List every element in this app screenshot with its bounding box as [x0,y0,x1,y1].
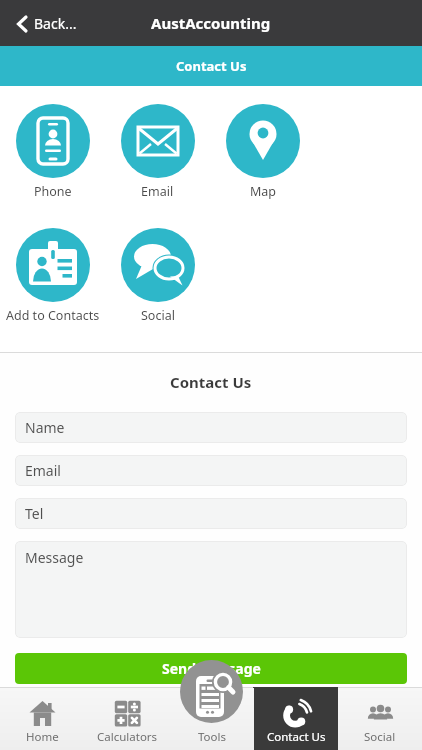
staticText: Home [26,729,59,745]
button[interactable]: Back... [16,14,77,33]
button[interactable] [121,104,195,178]
staticText: Tools [198,729,226,745]
staticText: Social [141,307,175,324]
staticText: Name [25,418,65,437]
staticText: Contact Us [170,372,252,392]
staticText: Email [141,183,174,200]
staticText: Email [25,461,61,480]
button[interactable]: Calculators [85,688,170,750]
staticText: Add to Contacts [6,307,100,324]
staticText: Map [250,183,277,200]
staticText: Send Message [162,659,261,678]
button[interactable]: Email [15,455,407,486]
button[interactable] [16,104,90,178]
button[interactable]: Send Message [15,653,407,684]
staticText: Tel [25,504,44,523]
button[interactable] [226,104,300,178]
staticText: AustAccounting [151,13,271,33]
button[interactable]: Contact Us [254,688,338,750]
button[interactable]: Social [338,688,422,750]
button[interactable]: Tel [15,498,407,529]
staticText: Phone [34,183,72,200]
button[interactable] [121,228,195,302]
button[interactable] [180,660,243,723]
button[interactable]: Home [0,688,85,750]
button[interactable]: Tools [170,688,254,750]
staticText: Contact Us [267,729,326,745]
staticText: Social [364,729,396,745]
staticText: Back... [34,14,77,33]
staticText: Contact Us [176,57,247,75]
staticText: Message [25,548,84,567]
button[interactable]: Name [15,412,407,443]
button[interactable]: Message [15,541,407,638]
button[interactable] [16,228,90,302]
staticText: Calculators [97,729,158,745]
